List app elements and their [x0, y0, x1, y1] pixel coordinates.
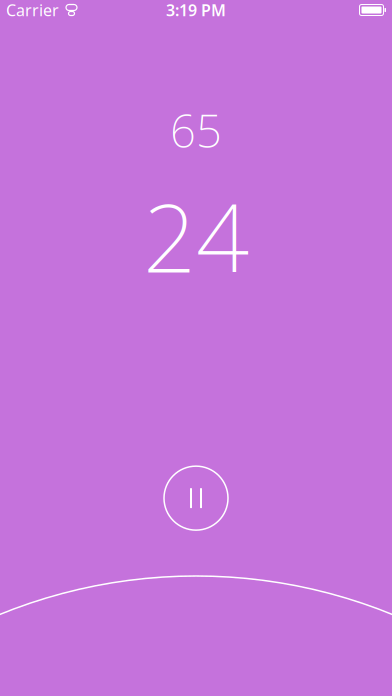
staticText: 3:19 PM [166, 0, 226, 21]
button[interactable]: Pause [164, 466, 228, 530]
staticText: Carrier [6, 0, 59, 21]
staticText: 24 [143, 174, 249, 298]
staticText: 65 [170, 100, 222, 160]
